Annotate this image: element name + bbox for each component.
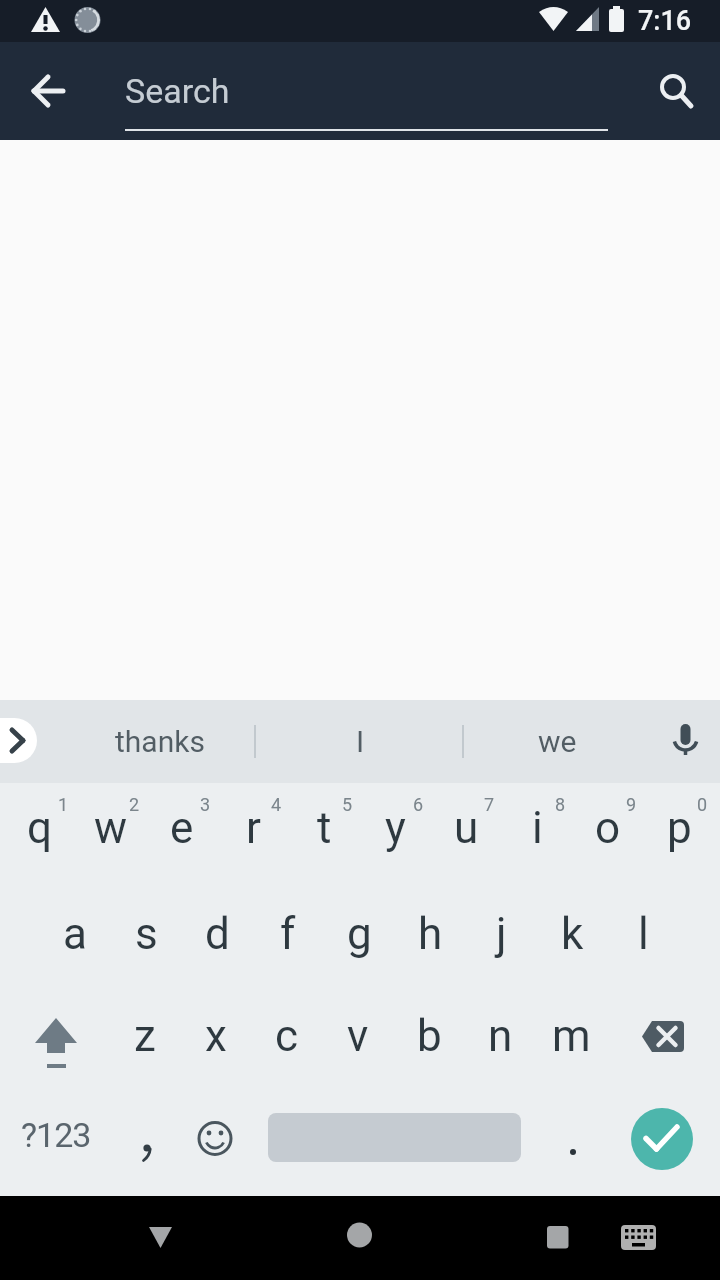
staticText: thanks — [115, 724, 205, 759]
staticText: x — [205, 1010, 227, 1062]
button[interactable]: u — [431, 777, 501, 879]
staticText: m — [552, 1010, 591, 1062]
button[interactable]: o — [573, 777, 643, 879]
button[interactable]: y — [360, 777, 430, 879]
staticText: v — [347, 1010, 369, 1062]
staticText: y — [385, 802, 406, 854]
button[interactable] — [18, 61, 78, 121]
staticText: we — [538, 724, 577, 759]
button[interactable]: b — [394, 985, 464, 1087]
button[interactable]: x — [181, 985, 251, 1087]
button[interactable]: i — [502, 777, 572, 879]
button[interactable]: c — [252, 985, 322, 1087]
button[interactable] — [116, 1105, 176, 1175]
button[interactable]: thanks — [90, 708, 230, 774]
button[interactable]: e — [147, 777, 217, 879]
button[interactable]: r — [218, 777, 288, 879]
staticText: a — [63, 908, 87, 960]
staticText: w — [94, 802, 128, 854]
staticText: n — [488, 1010, 513, 1062]
button[interactable] — [16, 988, 96, 1090]
button[interactable] — [130, 1207, 190, 1263]
button[interactable]: m — [536, 985, 606, 1087]
button[interactable]: h — [395, 883, 465, 985]
staticText: 7:16 — [638, 5, 692, 37]
staticText: ?123 — [21, 1115, 91, 1155]
staticText: 6 — [413, 794, 424, 815]
button[interactable]: s — [111, 883, 181, 985]
button[interactable]: v — [323, 985, 393, 1087]
staticText: 2 — [129, 794, 140, 815]
button[interactable]: we — [487, 708, 627, 774]
staticText: 5 — [342, 794, 353, 815]
button[interactable] — [527, 1207, 587, 1263]
button[interactable]: q — [5, 777, 75, 879]
button[interactable]: ?123 — [17, 1105, 94, 1165]
button[interactable]: t — [289, 777, 359, 879]
staticText: 8 — [555, 794, 566, 815]
button[interactable] — [608, 1207, 668, 1263]
button[interactable]: l — [608, 883, 678, 985]
staticText: h — [418, 908, 443, 960]
staticText: 1 — [58, 794, 69, 815]
staticText: I — [356, 724, 365, 759]
button[interactable] — [622, 988, 702, 1090]
button[interactable]: I — [290, 708, 430, 774]
button[interactable] — [0, 718, 37, 763]
staticText: o — [595, 802, 621, 854]
button[interactable]: p — [644, 777, 714, 879]
button[interactable]: n — [465, 985, 535, 1087]
staticText: c — [275, 1010, 299, 1062]
button[interactable] — [187, 1110, 243, 1166]
staticText: 0 — [697, 794, 708, 815]
staticText: g — [347, 908, 372, 960]
button[interactable]: g — [324, 883, 394, 985]
staticText: f — [280, 908, 296, 960]
button[interactable]: w — [76, 777, 146, 879]
staticText: j — [496, 908, 507, 960]
staticText: 3 — [200, 794, 211, 815]
button[interactable]: a — [40, 883, 110, 985]
button[interactable]: k — [537, 883, 607, 985]
button[interactable]: d — [182, 883, 252, 985]
staticText: t — [317, 802, 332, 854]
staticText: 7 — [484, 794, 495, 815]
staticText: r — [246, 802, 261, 854]
staticText: b — [417, 1010, 442, 1062]
staticText: l — [638, 908, 649, 960]
staticText: 9 — [626, 794, 637, 815]
staticText: e — [170, 802, 194, 854]
staticText: i — [532, 802, 543, 854]
button[interactable]: z — [110, 985, 180, 1087]
staticText: Search — [125, 71, 230, 111]
button[interactable]: f — [253, 883, 323, 985]
button[interactable] — [645, 61, 705, 121]
staticText: z — [134, 1010, 156, 1062]
button[interactable] — [631, 1108, 693, 1170]
staticText: q — [27, 802, 53, 854]
staticText: s — [135, 908, 158, 960]
staticText: u — [454, 802, 479, 854]
staticText: k — [561, 908, 584, 960]
button[interactable] — [329, 1207, 389, 1263]
staticText: p — [667, 802, 692, 854]
staticText: d — [205, 908, 230, 960]
staticText: 4 — [271, 794, 282, 815]
button[interactable] — [543, 1110, 603, 1170]
button[interactable]: j — [466, 883, 536, 985]
button[interactable] — [660, 712, 712, 768]
